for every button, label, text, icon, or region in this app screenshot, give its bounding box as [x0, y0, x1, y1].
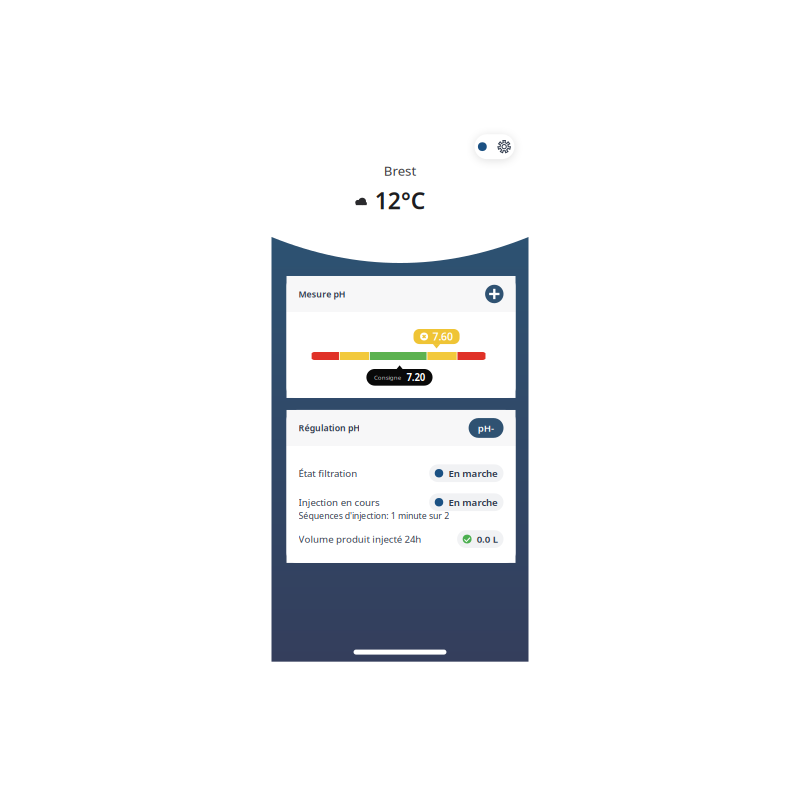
staticText: État filtration — [246, 537, 335, 557]
staticText: Mesure pH — [246, 266, 317, 284]
staticText: En marche — [474, 581, 549, 601]
staticText: Séquences d'injection: 1 minute sur 2 — [246, 602, 475, 620]
button[interactable]: pH minus — [504, 463, 557, 493]
staticText: 7.20 — [410, 392, 438, 411]
staticText: 0.0 L — [517, 637, 549, 657]
staticText: pH- — [518, 468, 543, 488]
staticText: Régulation pH — [246, 469, 339, 487]
staticText: Volume produit injecté 24h — [246, 637, 432, 657]
staticText: 7.60 — [449, 329, 480, 350]
staticText: Injection en cours — [246, 581, 369, 601]
staticText: Consigne — [360, 395, 401, 408]
staticText: En marche — [474, 537, 549, 557]
